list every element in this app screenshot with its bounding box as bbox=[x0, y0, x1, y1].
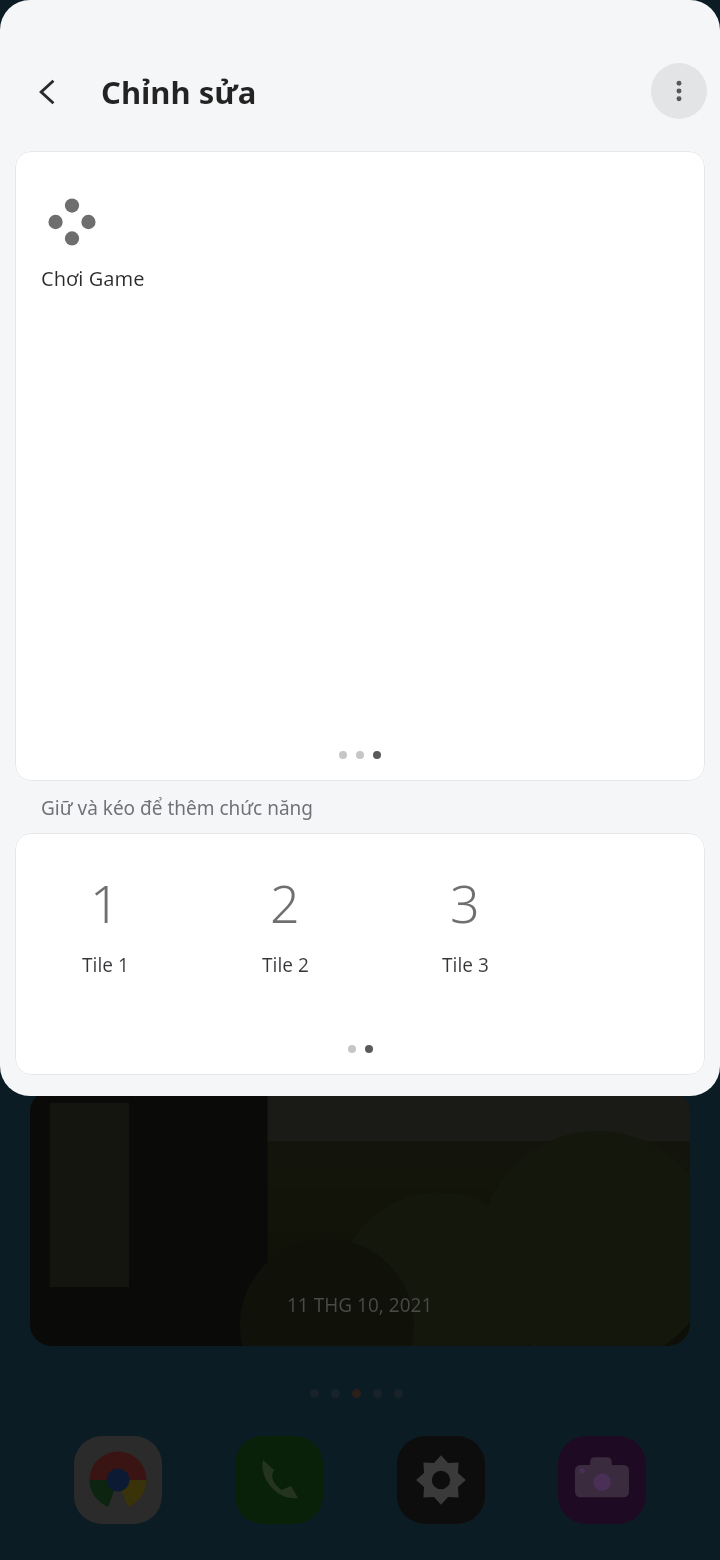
staticText: 1 bbox=[90, 867, 120, 938]
button[interactable]: 3 bbox=[390, 863, 540, 982]
button[interactable]: App bbox=[74, 1436, 162, 1524]
button[interactable]: 2 bbox=[210, 863, 360, 982]
button[interactable]: 1 bbox=[30, 863, 180, 982]
button[interactable]: Back bbox=[18, 62, 78, 122]
staticText: 2 bbox=[270, 867, 300, 938]
button[interactable]: App bbox=[558, 1436, 646, 1524]
staticText: Tile 2 bbox=[262, 952, 309, 978]
button[interactable]: App bbox=[235, 1436, 323, 1524]
staticText: 11 THG 10, 2021 bbox=[287, 1292, 433, 1318]
staticText: Chỉnh sửa bbox=[101, 71, 257, 113]
button[interactable]: Chơi Game bbox=[41, 191, 157, 300]
staticText: Giữ và kéo để thêm chức năng bbox=[41, 795, 313, 821]
staticText: Tile 3 bbox=[442, 952, 489, 978]
staticText: Tile 1 bbox=[82, 952, 129, 978]
staticText: Chơi Game bbox=[41, 265, 145, 292]
button[interactable]: More options bbox=[651, 63, 707, 119]
staticText: 3 bbox=[450, 867, 480, 938]
button[interactable]: App bbox=[397, 1436, 485, 1524]
